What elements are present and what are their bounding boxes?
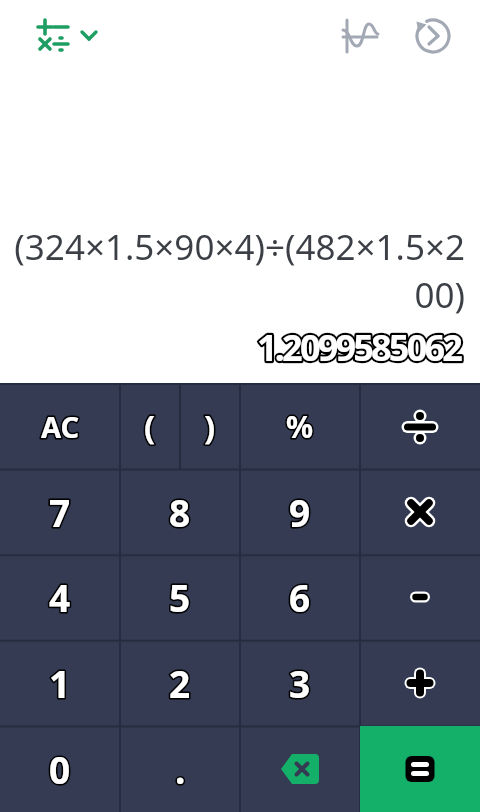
button[interactable]: 1: [0, 640, 120, 726]
button[interactable]: ): [180, 384, 240, 469]
staticText: 00): [414, 271, 465, 319]
button[interactable]: %: [240, 384, 360, 469]
staticText: AC: [41, 407, 80, 446]
staticText: 1: [49, 658, 71, 708]
button[interactable]: [409, 12, 457, 60]
staticText: %: [286, 406, 314, 447]
staticText: 6: [289, 572, 311, 622]
staticText: (: [144, 404, 156, 449]
button[interactable]: 3: [240, 640, 360, 726]
staticText: 5: [169, 572, 191, 622]
button[interactable]: .: [120, 726, 240, 812]
button[interactable]: 2: [120, 640, 240, 726]
button[interactable]: 4: [0, 554, 120, 640]
button[interactable]: [360, 640, 480, 726]
staticText: 2: [169, 658, 191, 708]
button[interactable]: [36, 19, 96, 51]
staticText: %: [286, 406, 314, 447]
button[interactable]: (: [120, 384, 180, 469]
staticText: 7: [49, 487, 71, 537]
button[interactable]: [360, 554, 480, 640]
staticText: 8: [169, 487, 191, 537]
staticText: 6: [289, 572, 311, 622]
staticText: 5: [169, 572, 191, 622]
button[interactable]: [360, 384, 480, 469]
button[interactable]: [360, 726, 480, 812]
button[interactable]: 7: [0, 469, 120, 554]
button[interactable]: 0: [0, 726, 120, 812]
staticText: .: [175, 744, 186, 794]
staticText: ): [204, 404, 216, 449]
staticText: .: [175, 744, 186, 794]
button[interactable]: [336, 12, 384, 60]
button[interactable]: AC: [0, 384, 120, 469]
staticText: 0: [49, 744, 71, 794]
staticText: 3: [289, 658, 311, 708]
staticText: AC: [41, 407, 80, 446]
staticText: 4: [49, 572, 71, 622]
staticText: 3: [289, 658, 311, 708]
staticText: 1: [49, 658, 71, 708]
staticText: 1.2099585062: [257, 323, 461, 372]
button[interactable]: 9: [240, 469, 360, 554]
button[interactable]: 8: [120, 469, 240, 554]
staticText: ): [204, 404, 216, 449]
staticText: 1.2099585062: [257, 323, 461, 372]
staticText: 9: [289, 487, 311, 537]
staticText: 4: [49, 572, 71, 622]
button[interactable]: [360, 469, 480, 554]
staticText: (324×1.5×90×4)÷(482×1.5×2: [14, 223, 465, 271]
button[interactable]: [240, 726, 360, 812]
button[interactable]: 5: [120, 554, 240, 640]
staticText: 2: [169, 658, 191, 708]
staticText: 0: [49, 744, 71, 794]
staticText: 7: [49, 487, 71, 537]
staticText: 8: [169, 487, 191, 537]
staticText: (: [144, 404, 156, 449]
button[interactable]: 6: [240, 554, 360, 640]
staticText: 9: [289, 487, 311, 537]
